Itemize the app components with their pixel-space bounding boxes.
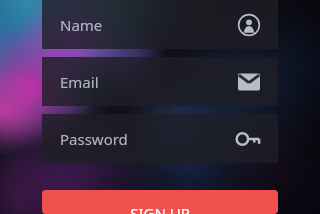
other: Password	[236, 126, 262, 152]
other: Email	[236, 69, 262, 95]
other: Name	[236, 12, 262, 38]
button[interactable]: SIGN UP	[42, 190, 278, 214]
staticText: SIGN UP	[130, 203, 190, 214]
staticText: Password	[60, 129, 128, 149]
staticText: Email	[60, 72, 99, 92]
staticText: Name	[60, 15, 103, 35]
button[interactable]: Name	[42, 0, 278, 49]
button[interactable]: Password	[42, 114, 278, 163]
button[interactable]: Email	[42, 57, 278, 106]
